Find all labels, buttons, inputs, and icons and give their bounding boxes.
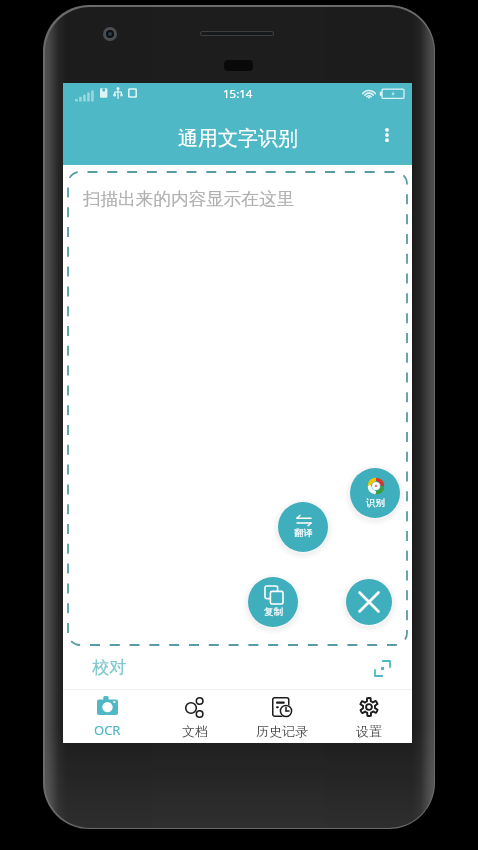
button[interactable]: 翻译 [278,502,328,552]
button[interactable]: Close [346,579,392,625]
button[interactable]: 设置 [325,690,412,743]
staticText: 扫描出来的内容显示在这里 [83,188,295,210]
button[interactable]: 识别 [350,468,400,518]
staticText: 翻译 [294,527,313,539]
staticText: OCR [94,721,121,739]
button[interactable]: 文档 [151,690,238,743]
button[interactable]: 历史记录 [238,690,325,743]
button[interactable]: Fullscreen [372,658,392,678]
button[interactable]: OCR [63,690,151,743]
staticText: 校对 [92,657,126,678]
staticText: 文档 [182,723,208,739]
staticText: 识别 [366,497,385,509]
staticText: 15:14 [223,86,253,102]
staticText: 设置 [356,723,382,739]
staticText: 复制 [264,606,283,618]
staticText: 历史记录 [256,723,308,739]
button[interactable]: 复制 [248,577,298,627]
button[interactable]: More options [374,122,400,148]
staticText: 通用文字识别 [178,126,298,151]
